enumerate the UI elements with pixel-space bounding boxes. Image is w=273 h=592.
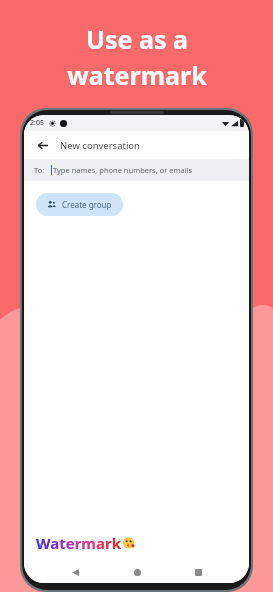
staticText: watermark <box>67 58 207 92</box>
staticText: Type names, phone numbers, or emails <box>53 165 193 175</box>
staticText: To: <box>34 165 45 175</box>
staticText: 2:05 <box>30 118 44 128</box>
staticText: Watermark <box>36 533 121 553</box>
button[interactable]: Recents <box>187 561 209 583</box>
staticText: New conversation <box>60 139 140 152</box>
button[interactable]: Home <box>126 561 148 583</box>
button[interactable]: Back <box>32 135 52 155</box>
button[interactable]: Back <box>64 561 86 583</box>
button[interactable]: Create group <box>36 193 123 216</box>
staticText: Use as a <box>86 22 188 56</box>
button[interactable]: To: <box>34 159 249 181</box>
staticText: Create group <box>62 199 112 210</box>
